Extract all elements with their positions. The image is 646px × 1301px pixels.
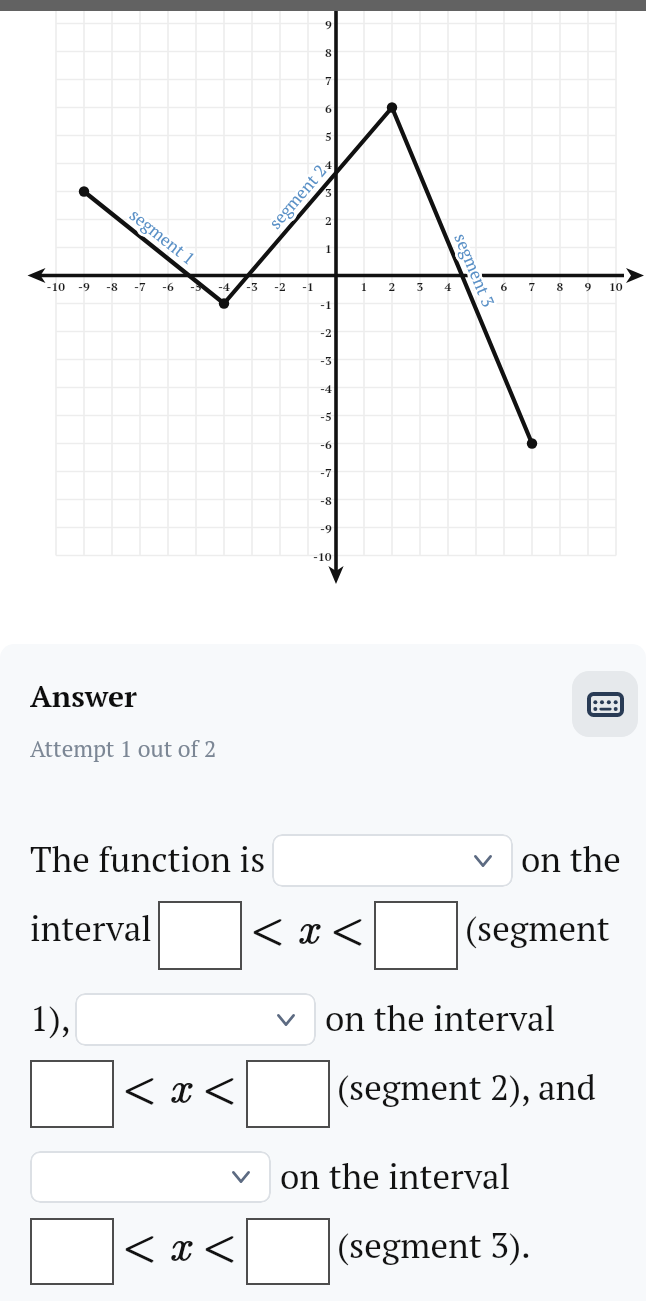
staticText: < [250, 894, 285, 956]
staticText: < [122, 1210, 157, 1272]
staticText: < [202, 1210, 237, 1272]
staticText: < [250, 893, 285, 955]
button[interactable]: Select option [75, 993, 316, 1046]
staticText: < [122, 1052, 157, 1114]
button[interactable]: Keyboard [572, 671, 638, 737]
button[interactable]: Blank answer [30, 1060, 114, 1128]
staticText: < [123, 1052, 158, 1114]
staticText: < [330, 893, 365, 955]
staticText: < [123, 1210, 158, 1272]
staticText: < [202, 1211, 237, 1273]
staticText: interval [30, 905, 152, 951]
staticText: (segment [465, 905, 610, 951]
staticText: x [170, 1210, 191, 1272]
staticText: x [169, 1210, 190, 1272]
staticText: Answer [30, 676, 137, 716]
staticText: on the interval [325, 995, 556, 1041]
button[interactable]: Select option [272, 834, 513, 887]
staticText: on the [521, 836, 621, 882]
staticText: x [169, 1211, 190, 1273]
button[interactable]: Blank answer [158, 901, 242, 970]
staticText: < [202, 1053, 237, 1115]
staticText: 1), [30, 995, 71, 1041]
button[interactable]: Blank answer [246, 1218, 330, 1285]
staticText: Attempt 1 out of 2 [30, 733, 217, 763]
staticText: < [330, 894, 365, 956]
staticText: < [203, 1052, 238, 1114]
staticText: x [297, 894, 318, 956]
staticText: < [202, 1052, 237, 1114]
button[interactable]: Blank answer [30, 1218, 114, 1285]
staticText: x [169, 1052, 190, 1114]
staticText: x [169, 1053, 190, 1115]
staticText: x [298, 893, 319, 955]
button[interactable]: Blank answer [246, 1060, 330, 1128]
button[interactable]: Blank answer [374, 901, 458, 970]
staticText: < [203, 1210, 238, 1272]
staticText: (segment 2), and [337, 1064, 596, 1110]
staticText: < [122, 1211, 157, 1273]
staticText: on the interval [280, 1153, 511, 1199]
staticText: < [251, 893, 286, 955]
staticText: x [297, 893, 318, 955]
staticText: < [122, 1053, 157, 1115]
button[interactable]: Select option [30, 1151, 271, 1203]
staticText: (segment 3). [337, 1222, 531, 1268]
staticText: < [331, 893, 366, 955]
staticText: x [170, 1052, 191, 1114]
staticText: The function is [30, 836, 266, 882]
